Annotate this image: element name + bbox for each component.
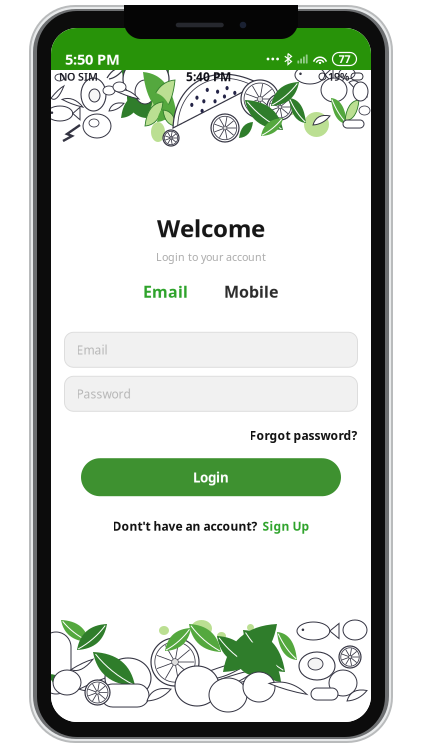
- button[interactable]: Mobile: [218, 278, 285, 305]
- staticText: Forgot password?: [249, 427, 357, 443]
- button[interactable]: Sign Up: [262, 518, 309, 534]
- staticText: Welcome: [157, 212, 265, 244]
- button[interactable]: Password: [64, 376, 357, 411]
- staticText: 5:40 PM: [186, 68, 231, 84]
- staticText: 77: [338, 52, 350, 66]
- staticText: 5:50 PM: [65, 49, 120, 69]
- staticText: Password: [76, 386, 130, 402]
- staticText: Email: [143, 281, 188, 302]
- button[interactable]: Email: [64, 332, 357, 367]
- button[interactable]: Login: [81, 458, 341, 496]
- staticText: Sign Up: [262, 518, 309, 534]
- staticText: 19%: [328, 69, 349, 84]
- staticText: Dont't have an account?: [112, 518, 257, 534]
- button[interactable]: Forgot password?: [249, 427, 357, 443]
- staticText: Mobile: [224, 281, 279, 302]
- button[interactable]: Email: [137, 278, 194, 305]
- staticText: NO SIM: [59, 69, 98, 84]
- staticText: Email: [76, 342, 107, 358]
- staticText: Login: [193, 468, 229, 486]
- staticText: Login to your account: [156, 250, 266, 264]
